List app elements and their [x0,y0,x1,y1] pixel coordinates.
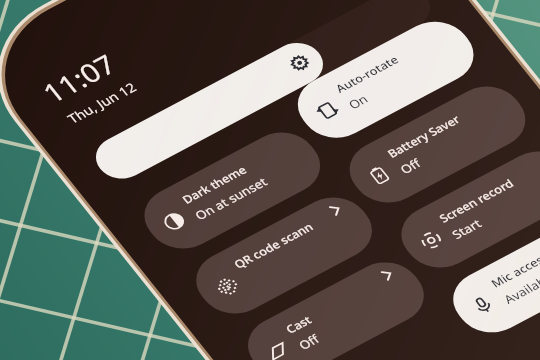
staticText: Battery Saver [383,108,464,165]
staticText: Start [448,214,486,244]
button[interactable] [0,0,540,314]
staticText: Auto-rotate [332,49,403,99]
button[interactable] [0,0,540,314]
button[interactable]: Brightness [0,0,540,314]
staticText: Dark theme [178,159,250,210]
staticText: Off [396,154,425,178]
staticText: Mic access [487,247,540,294]
button[interactable] [0,0,540,314]
staticText: Cast [282,311,316,338]
staticText: Screen record [435,172,518,230]
button[interactable] [0,0,540,314]
staticText: Available [499,266,540,310]
staticText: Thu, Jun 12 [63,75,141,130]
staticText: On [344,90,373,113]
staticText: On at sunset [191,170,271,227]
button[interactable] [0,0,540,314]
staticText: QR code scann [230,215,317,276]
button[interactable] [0,0,540,314]
staticText: 11:07 [33,43,125,113]
button[interactable] [0,0,540,314]
staticText: Off [294,330,324,354]
